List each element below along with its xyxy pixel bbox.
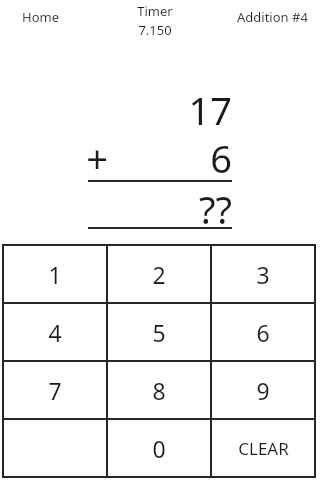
staticText: Home xyxy=(22,8,59,26)
button[interactable]: 2 xyxy=(108,246,210,302)
staticText: ?? xyxy=(150,183,232,235)
button[interactable]: 8 xyxy=(108,362,210,418)
button[interactable]: 3 xyxy=(212,246,314,302)
staticText: 7.150 xyxy=(138,21,172,39)
button[interactable]: 6 xyxy=(212,304,314,360)
staticText: 6 xyxy=(256,317,270,348)
button[interactable]: 7 xyxy=(4,362,106,418)
staticText: CLEAR xyxy=(238,437,289,460)
staticText: 0 xyxy=(152,433,166,464)
staticText: 5 xyxy=(152,317,166,348)
staticText: 3 xyxy=(256,259,270,290)
button[interactable]: 9 xyxy=(212,362,314,418)
staticText: Addition #4 xyxy=(237,8,308,26)
button[interactable]: 1 xyxy=(4,246,106,302)
button[interactable]: Timer xyxy=(137,2,173,39)
staticText: 2 xyxy=(152,259,166,290)
staticText: 17 xyxy=(150,84,232,136)
staticText: 9 xyxy=(256,375,270,406)
staticText: 7 xyxy=(48,375,62,406)
button[interactable]: Addition #4 xyxy=(237,8,308,26)
staticText: + xyxy=(78,132,108,184)
button[interactable]: 4 xyxy=(4,304,106,360)
staticText: 6 xyxy=(150,132,232,184)
staticText: Timer xyxy=(137,2,173,20)
staticText: 4 xyxy=(48,317,62,348)
button[interactable]: Home xyxy=(22,8,59,26)
button[interactable]: CLEAR xyxy=(212,420,314,476)
staticText: 1 xyxy=(48,259,62,290)
button[interactable]: 5 xyxy=(108,304,210,360)
button[interactable]: 0 xyxy=(108,420,210,476)
staticText: 8 xyxy=(152,375,166,406)
